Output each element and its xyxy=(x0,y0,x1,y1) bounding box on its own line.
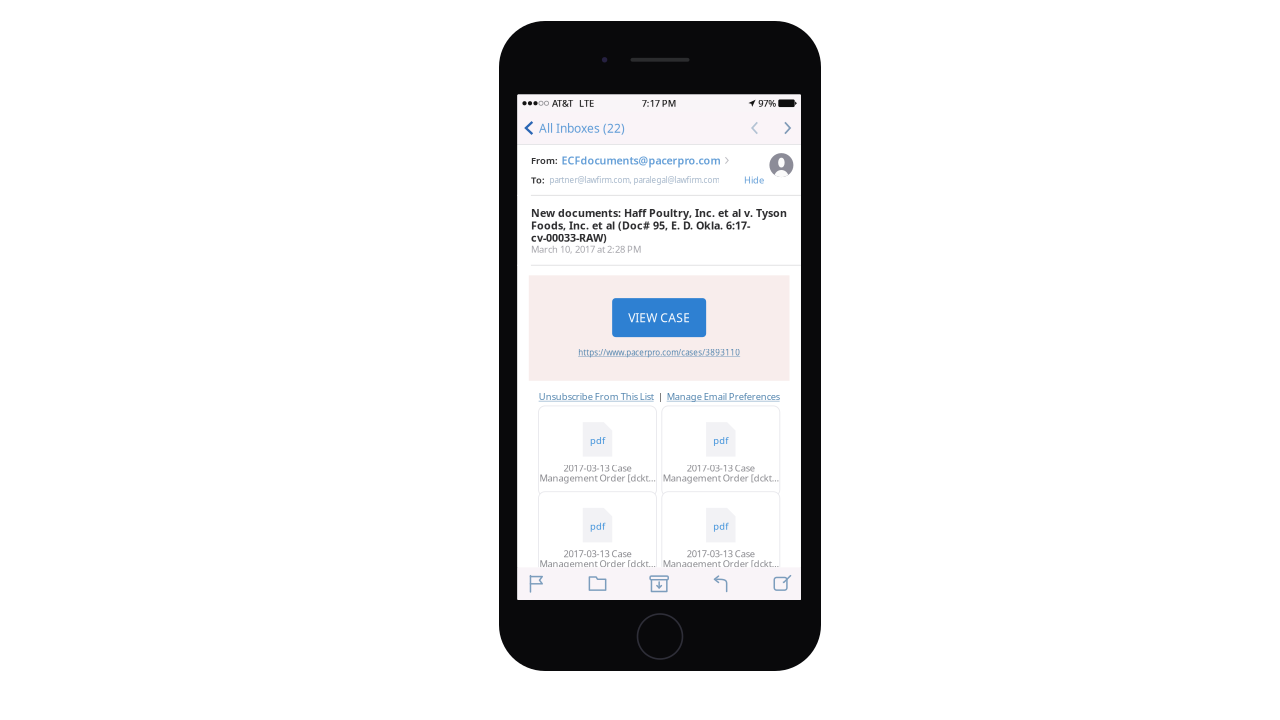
staticText: Management Order [dckt… xyxy=(663,472,779,484)
staticText: 2017-03-13 Case xyxy=(687,462,755,474)
button[interactable]: Hide xyxy=(741,174,767,186)
staticText: | xyxy=(658,390,663,402)
staticText: 2017-03-13 Case xyxy=(687,548,755,560)
button[interactable]: pdf xyxy=(662,492,780,582)
button[interactable]: Move to folder xyxy=(587,567,608,600)
staticText: ECFdocuments@pacerpro.com xyxy=(561,153,720,167)
staticText: VIEW CASE xyxy=(628,310,690,325)
staticText: 2017-03-13 Case xyxy=(563,462,631,474)
button[interactable]: From: xyxy=(531,155,729,166)
button[interactable]: Next message xyxy=(776,112,799,144)
button[interactable]: Manage Email Preferences xyxy=(667,390,780,402)
staticText: Management Order [dckt… xyxy=(539,557,655,570)
staticText: cv-00033-RAW) xyxy=(531,231,607,245)
staticText: To: xyxy=(531,174,545,186)
button[interactable]: pdf xyxy=(538,492,656,582)
staticText: AT&T xyxy=(552,97,573,109)
button[interactable]: pdf xyxy=(538,406,656,496)
button[interactable]: Previous message xyxy=(743,112,766,144)
staticText: LTE xyxy=(579,97,594,109)
button[interactable]: https://www.pacerpro.com/cases/3893110 xyxy=(578,347,740,358)
staticText: https://www.pacerpro.com/cases/3893110 xyxy=(578,347,740,358)
staticText: Unsubscribe From This List xyxy=(539,390,654,402)
staticText: pdf xyxy=(590,520,605,532)
staticText: March 10, 2017 at 2:28 PM xyxy=(531,243,641,255)
button[interactable]: Unsubscribe From This List xyxy=(539,390,654,402)
staticText: New documents: Haff Poultry, Inc. et al … xyxy=(531,206,787,220)
button[interactable]: Archive xyxy=(649,567,670,600)
button[interactable]: Reply xyxy=(710,567,731,600)
staticText: 97% xyxy=(758,97,776,109)
button[interactable]: VIEW CASE xyxy=(612,298,706,337)
staticText: pdf xyxy=(713,520,728,532)
staticText: partner@lawfirm.com, paralegal@lawfirm.c… xyxy=(549,175,719,185)
staticText: From: xyxy=(531,154,558,167)
staticText: 7:17 PM xyxy=(642,97,677,109)
staticText: All Inboxes (22) xyxy=(539,120,625,136)
button[interactable]: All Inboxes (22) xyxy=(517,112,633,144)
button[interactable]: Compose xyxy=(772,567,793,600)
staticText: Foods, Inc. et al (Doc# 95, E. D. Okla. … xyxy=(531,218,750,232)
staticText: pdf xyxy=(713,434,728,447)
button[interactable]: pdf xyxy=(662,406,780,496)
staticText: Manage Email Preferences xyxy=(667,390,780,402)
staticText: Management Order [dckt… xyxy=(663,557,779,570)
staticText: pdf xyxy=(590,434,605,447)
staticText: 2017-03-13 Case xyxy=(563,548,631,560)
button[interactable]: Flag xyxy=(525,567,546,600)
staticText: Management Order [dckt… xyxy=(539,472,655,484)
staticText: Hide xyxy=(744,174,764,186)
